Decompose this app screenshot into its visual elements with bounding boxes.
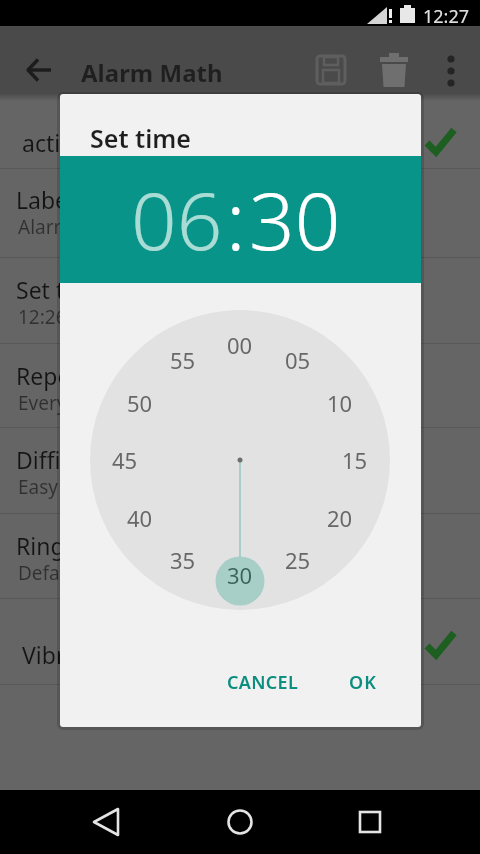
staticText: Default xyxy=(18,560,84,586)
button[interactable] xyxy=(210,790,270,854)
button[interactable] xyxy=(340,790,400,854)
button[interactable]: OK xyxy=(328,654,398,710)
button[interactable]: 45 xyxy=(99,445,151,475)
button[interactable] xyxy=(438,50,464,90)
button[interactable] xyxy=(0,168,480,254)
button[interactable]: 05 xyxy=(272,345,324,375)
staticText: 45 xyxy=(112,445,138,475)
button[interactable] xyxy=(0,514,480,600)
staticText: 15 xyxy=(342,445,368,475)
staticText: Easy xyxy=(18,474,59,500)
button[interactable]: 50 xyxy=(114,388,166,418)
button[interactable]: 35 xyxy=(157,545,209,575)
staticText: Label xyxy=(16,184,75,215)
staticText: Difficulty xyxy=(16,444,112,475)
button[interactable]: 55 xyxy=(157,345,209,375)
staticText: Set time xyxy=(90,121,191,155)
button[interactable] xyxy=(0,94,480,168)
staticText: 10 xyxy=(327,388,353,418)
staticText: 06 xyxy=(131,164,223,273)
button[interactable] xyxy=(20,52,58,88)
button[interactable]: 00 xyxy=(214,330,266,360)
staticText: 55 xyxy=(170,345,196,375)
staticText: 30 xyxy=(249,164,341,273)
staticText: 12:26 am xyxy=(18,304,100,330)
staticText: : xyxy=(226,164,246,273)
staticText: Alarm Math xyxy=(81,56,223,89)
staticText: 20 xyxy=(327,503,353,533)
staticText: 50 xyxy=(127,388,153,418)
staticText: 00 xyxy=(227,330,253,360)
staticText: Ringtone xyxy=(16,530,115,561)
staticText: Alarm xyxy=(18,214,72,240)
button[interactable] xyxy=(314,53,348,87)
button[interactable]: 40 xyxy=(114,503,166,533)
button[interactable]: 15 xyxy=(329,445,381,475)
button[interactable]: 25 xyxy=(272,545,324,575)
button[interactable] xyxy=(376,51,412,89)
staticText: 12:27 xyxy=(423,4,470,29)
button[interactable] xyxy=(0,599,480,685)
button[interactable] xyxy=(0,428,480,514)
staticText: 35 xyxy=(170,545,196,575)
staticText: 25 xyxy=(285,545,311,575)
staticText: Set time xyxy=(16,274,105,305)
staticText: activate xyxy=(22,127,107,158)
button[interactable] xyxy=(80,790,140,854)
button[interactable]: 20 xyxy=(314,503,366,533)
button[interactable]: 10 xyxy=(314,388,366,418)
button[interactable] xyxy=(0,344,480,430)
staticText: Vibrate xyxy=(22,639,100,670)
staticText: 30 xyxy=(227,560,253,590)
staticText: 05 xyxy=(285,345,311,375)
staticText: 40 xyxy=(127,503,153,533)
staticText: CANCEL xyxy=(227,670,299,695)
staticText: Repeat xyxy=(16,360,92,391)
button[interactable]: CANCEL xyxy=(200,654,325,710)
staticText: OK xyxy=(349,670,378,695)
button[interactable] xyxy=(0,258,480,344)
staticText: Every day xyxy=(18,390,104,416)
button[interactable]: 30 xyxy=(214,560,266,590)
